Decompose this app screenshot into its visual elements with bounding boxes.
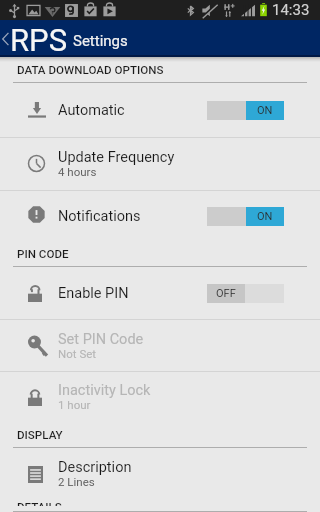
staticText: 14:33 xyxy=(272,1,310,19)
button[interactable]: Off xyxy=(207,284,284,303)
staticText: 4 hours xyxy=(58,165,97,178)
staticText: Settings xyxy=(73,32,128,50)
button[interactable]: Back xyxy=(0,20,320,57)
staticText: ON xyxy=(257,210,273,223)
staticText: Set PIN Code xyxy=(58,331,144,348)
staticText: Notifications xyxy=(58,208,141,225)
staticText: Automatic xyxy=(58,102,125,119)
button[interactable]: Automatic xyxy=(0,83,320,137)
button[interactable]: Description xyxy=(0,448,320,500)
staticText: Inactivity Lock xyxy=(58,382,151,399)
staticText: RPS xyxy=(10,22,68,58)
staticText: DISPLAY xyxy=(17,428,63,442)
staticText: Update Frequency xyxy=(58,149,175,166)
staticText: ON xyxy=(257,104,273,117)
button[interactable]: Enable PIN xyxy=(0,267,320,319)
staticText: Enable PIN xyxy=(58,285,129,302)
staticText: PIN CODE xyxy=(17,247,69,261)
staticText: 2 Lines xyxy=(58,475,95,488)
button[interactable]: Update Frequency xyxy=(0,138,320,190)
button[interactable]: On xyxy=(207,207,284,226)
staticText: OFF xyxy=(216,287,236,300)
button[interactable]: Inactivity Lock xyxy=(0,372,320,422)
button[interactable]: On xyxy=(207,101,284,120)
staticText: DATA DOWNLOAD OPTIONS xyxy=(17,63,164,77)
staticText: Description xyxy=(58,459,132,476)
staticText: 1 hour xyxy=(58,398,91,411)
button[interactable]: Notifications xyxy=(0,191,320,241)
staticText: Not Set xyxy=(58,347,97,360)
button[interactable]: Set PIN Code xyxy=(0,320,320,371)
staticText: DETAILS xyxy=(17,500,62,506)
